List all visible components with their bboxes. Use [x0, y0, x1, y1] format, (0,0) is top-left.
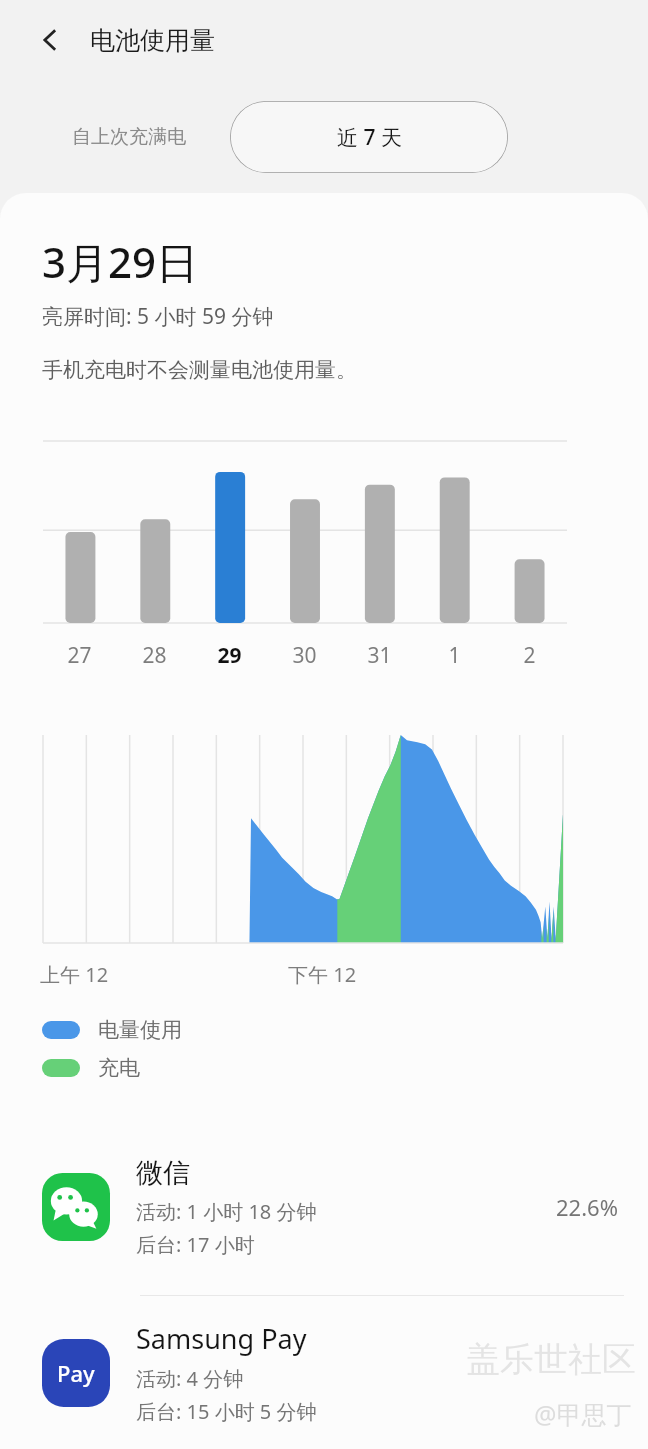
button[interactable]: 电量使用: [0, 1015, 648, 1045]
staticText: 充电: [98, 1055, 140, 1081]
staticText: 上午 12: [40, 961, 109, 988]
button[interactable]: 近 7 天: [230, 101, 508, 173]
staticText: 28: [142, 641, 167, 670]
staticText: 盖乐世社区: [466, 1338, 636, 1381]
staticText: Pay: [57, 1358, 95, 1388]
staticText: 30: [292, 641, 317, 670]
staticText: 微信: [136, 1156, 190, 1190]
staticText: 22.6%: [556, 1192, 618, 1222]
staticText: 自上次充满电: [72, 125, 186, 149]
staticText: 亮屏时间: 5 小时 59 分钟: [42, 302, 274, 331]
staticText: 手机充电时不会测量电池使用量。: [42, 357, 357, 383]
button[interactable]: 充电: [0, 1053, 648, 1083]
staticText: 活动: 1 小时 18 分钟: [136, 1198, 317, 1225]
button[interactable]: Pay: [0, 1296, 648, 1449]
staticText: 27: [67, 641, 92, 670]
button[interactable]: Back: [22, 12, 78, 68]
staticText: 3月29日: [42, 233, 199, 290]
staticText: Samsung Pay: [136, 1320, 307, 1357]
staticText: 近 7 天: [337, 123, 402, 152]
staticText: 电池使用量: [90, 25, 215, 56]
staticText: 2: [523, 641, 536, 670]
staticText: 1: [448, 641, 461, 670]
staticText: 29: [217, 641, 242, 670]
staticText: 31: [367, 641, 392, 670]
button[interactable]: 微信: [0, 1119, 648, 1296]
staticText: 后台: 17 小时: [136, 1231, 255, 1258]
button[interactable]: 自上次充满电: [60, 115, 198, 159]
staticText: 活动: 4 分钟: [136, 1365, 244, 1392]
staticText: 后台: 15 小时 5 分钟: [136, 1398, 317, 1425]
staticText: @甲思丁: [534, 1397, 632, 1431]
staticText: 电量使用: [98, 1017, 182, 1043]
staticText: 下午 12: [288, 961, 357, 988]
